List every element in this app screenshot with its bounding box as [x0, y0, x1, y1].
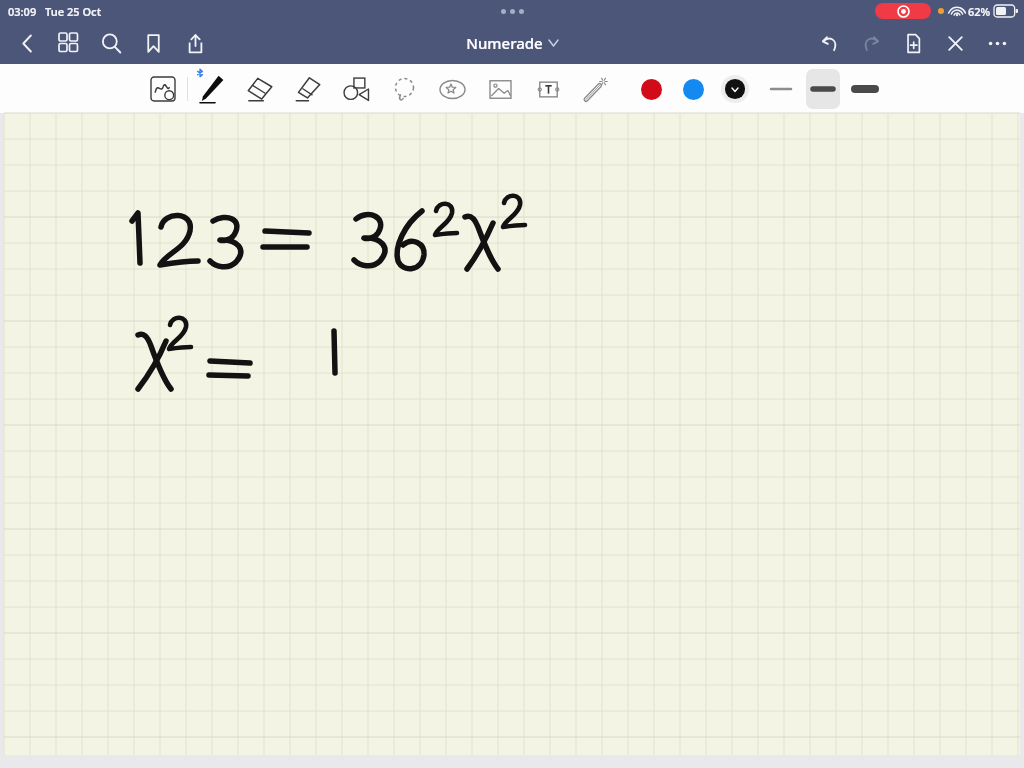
- staticText: 62%: [968, 4, 991, 19]
- button[interactable]: Magic wand: [572, 67, 620, 111]
- button[interactable]: Lasso: [380, 67, 428, 111]
- button[interactable]: Numerade: [466, 33, 558, 53]
- button[interactable]: Thin stroke: [764, 69, 798, 109]
- button[interactable]: More: [976, 22, 1018, 64]
- button[interactable]: Thick stroke: [848, 69, 882, 109]
- button[interactable]: Zoom write: [139, 67, 187, 111]
- button[interactable]: Bookmark: [132, 22, 174, 64]
- button[interactable]: Image: [476, 67, 524, 111]
- button[interactable]: Highlighter: [284, 67, 332, 111]
- staticText: 03:09: [8, 4, 37, 19]
- button[interactable]: Blue: [672, 67, 714, 111]
- staticText: Tue 25 Oct: [45, 4, 102, 19]
- button[interactable]: Pen: [188, 67, 236, 111]
- button[interactable]: Black: [714, 67, 756, 111]
- button[interactable]: Red: [630, 67, 672, 111]
- button[interactable]: Share: [174, 22, 216, 64]
- button[interactable]: Eraser: [236, 67, 284, 111]
- button[interactable]: Redo: [850, 22, 892, 64]
- button[interactable]: Shapes: [332, 67, 380, 111]
- button[interactable]: Medium stroke: [806, 69, 840, 109]
- button[interactable]: Undo: [808, 22, 850, 64]
- button[interactable]: New page: [892, 22, 934, 64]
- button[interactable]: Back: [6, 22, 48, 64]
- staticText: Numerade: [466, 33, 543, 53]
- button[interactable]: Pages: [48, 22, 90, 64]
- button[interactable]: Sticker: [428, 67, 476, 111]
- button[interactable]: Close: [934, 22, 976, 64]
- button[interactable]: Text box: [524, 67, 572, 111]
- button[interactable]: Search: [90, 22, 132, 64]
